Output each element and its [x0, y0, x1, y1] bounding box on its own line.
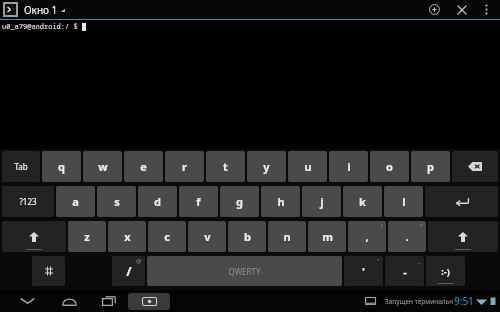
- staticText: q: [58, 159, 65, 174]
- staticText: d: [154, 194, 161, 209]
- staticText: u: [304, 159, 312, 174]
- button[interactable]: Hide keyboard: [10, 290, 44, 312]
- staticText: .: [405, 229, 409, 244]
- staticText: w: [98, 159, 108, 174]
- button[interactable]: e: [124, 151, 163, 182]
- button[interactable]: g: [220, 186, 259, 217]
- button[interactable]: :-): [426, 256, 465, 286]
- button[interactable]: Tab: [2, 151, 40, 182]
- staticText: QWERTY: [228, 266, 261, 277]
- button[interactable]: /: [112, 256, 145, 286]
- staticText: h: [277, 194, 285, 209]
- staticText: Tab: [14, 161, 28, 172]
- staticText: /: [126, 262, 132, 280]
- button[interactable]: .: [388, 221, 426, 252]
- staticText: @: [136, 257, 142, 265]
- button[interactable]: a: [56, 186, 95, 217]
- button[interactable]: Shift: [428, 221, 498, 252]
- button[interactable]: Notification: [359, 290, 381, 312]
- button[interactable]: Switch input method: [128, 293, 170, 310]
- staticText: b: [244, 229, 251, 244]
- staticText: n: [283, 229, 291, 244]
- button[interactable]: b: [228, 221, 266, 252]
- staticText: l: [402, 194, 406, 209]
- staticText: e: [140, 159, 147, 174]
- button[interactable]: v: [188, 221, 226, 252]
- staticText: y: [263, 159, 270, 174]
- button[interactable]: New window: [421, 0, 448, 19]
- button[interactable]: z: [68, 221, 106, 252]
- button[interactable]: More options: [475, 0, 497, 19]
- staticText: z: [84, 229, 90, 244]
- button[interactable]: Backspace: [452, 151, 498, 182]
- button[interactable]: Enter: [425, 186, 498, 217]
- staticText: o: [386, 159, 393, 174]
- staticText: r: [182, 159, 187, 174]
- button[interactable]: i: [329, 151, 368, 182]
- button[interactable]: k: [343, 186, 382, 217]
- button[interactable]: r: [165, 151, 204, 182]
- staticText: f: [196, 194, 201, 209]
- staticText: ,: [365, 229, 369, 244]
- staticText: -: [403, 264, 407, 279]
- button[interactable]: Home: [52, 290, 86, 312]
- staticText: i: [347, 159, 351, 174]
- button[interactable]: Keyboard settings: [32, 256, 65, 286]
- staticText: c: [164, 229, 170, 244]
- button[interactable]: q: [42, 151, 81, 182]
- button[interactable]: Окно 1: [0, 0, 110, 19]
- staticText: _: [418, 257, 421, 265]
- staticText: j: [320, 194, 324, 209]
- button[interactable]: x: [108, 221, 146, 252]
- button[interactable]: -: [385, 256, 424, 286]
- button[interactable]: y: [247, 151, 286, 182]
- staticText: t: [223, 159, 228, 174]
- button[interactable]: c: [148, 221, 186, 252]
- staticText: m: [322, 229, 333, 244]
- staticText: a: [72, 194, 79, 209]
- staticText: Запущен терминальн: [385, 297, 454, 306]
- staticText: ?123: [19, 196, 37, 207]
- staticText: g: [236, 194, 243, 209]
- button[interactable]: j: [302, 186, 341, 217]
- staticText: ': [362, 264, 365, 279]
- button[interactable]: t: [206, 151, 245, 182]
- staticText: v: [204, 229, 211, 244]
- staticText: !: [381, 222, 383, 230]
- button[interactable]: Recent apps: [92, 290, 126, 312]
- button[interactable]: u: [288, 151, 327, 182]
- staticText: k: [359, 194, 366, 209]
- button[interactable]: w: [83, 151, 122, 182]
- staticText: ?: [420, 222, 423, 230]
- button[interactable]: QWERTY: [147, 256, 342, 286]
- staticText: ": [377, 257, 380, 265]
- staticText: :-): [441, 265, 450, 277]
- button[interactable]: h: [261, 186, 300, 217]
- button[interactable]: m: [308, 221, 346, 252]
- button[interactable]: ,: [348, 221, 386, 252]
- button[interactable]: ?123: [2, 186, 54, 217]
- button[interactable]: Close window: [448, 0, 475, 19]
- staticText: p: [427, 159, 434, 174]
- button[interactable]: ': [344, 256, 383, 286]
- staticText: s: [114, 194, 120, 209]
- button[interactable]: n: [268, 221, 306, 252]
- button[interactable]: d: [138, 186, 177, 217]
- staticText: Окно 1: [24, 3, 58, 17]
- staticText: u0_a79@android:/ $: [2, 22, 82, 32]
- button[interactable]: f: [179, 186, 218, 217]
- button[interactable]: s: [97, 186, 136, 217]
- button[interactable]: Shift: [2, 221, 66, 252]
- button[interactable]: o: [370, 151, 409, 182]
- button[interactable]: l: [384, 186, 423, 217]
- button[interactable]: p: [411, 151, 450, 182]
- staticText: x: [124, 229, 131, 244]
- staticText: 9:51: [454, 294, 474, 308]
